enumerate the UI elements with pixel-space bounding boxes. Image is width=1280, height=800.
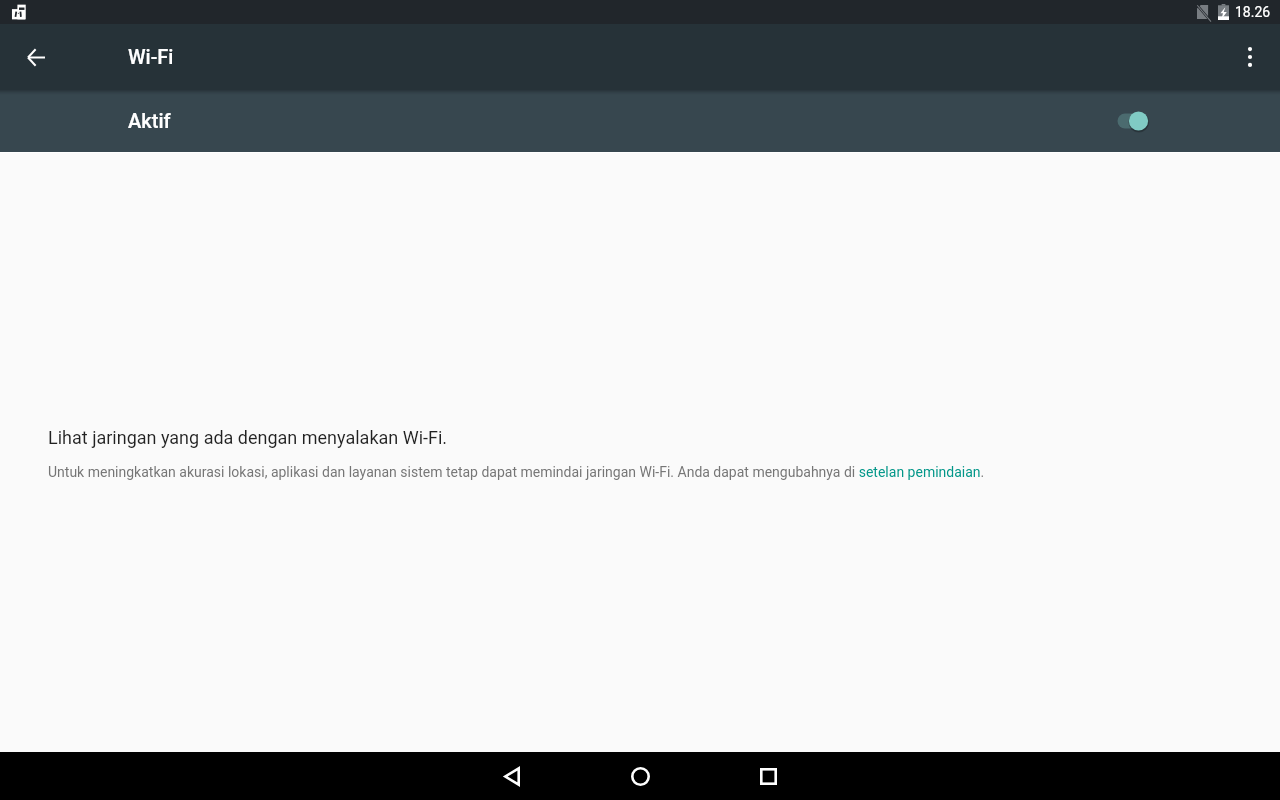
staticText: Aktif <box>128 109 171 132</box>
staticText: Wi-Fi <box>128 45 174 68</box>
button[interactable]: More options <box>1227 34 1273 80</box>
button[interactable]: Home <box>616 752 664 800</box>
staticText: 18.26 <box>1235 4 1271 20</box>
button[interactable]: Back <box>488 752 536 800</box>
staticText: Lihat jaringan yang ada dengan menyalaka… <box>48 427 448 448</box>
button[interactable]: Recent apps <box>744 752 792 800</box>
staticText: Untuk meningkatkan akurasi lokasi, aplik… <box>48 464 985 480</box>
button[interactable]: Navigate up <box>13 34 59 80</box>
button[interactable]: Wi-Fi on <box>1111 104 1155 138</box>
button[interactable]: Aktif <box>0 90 1280 152</box>
